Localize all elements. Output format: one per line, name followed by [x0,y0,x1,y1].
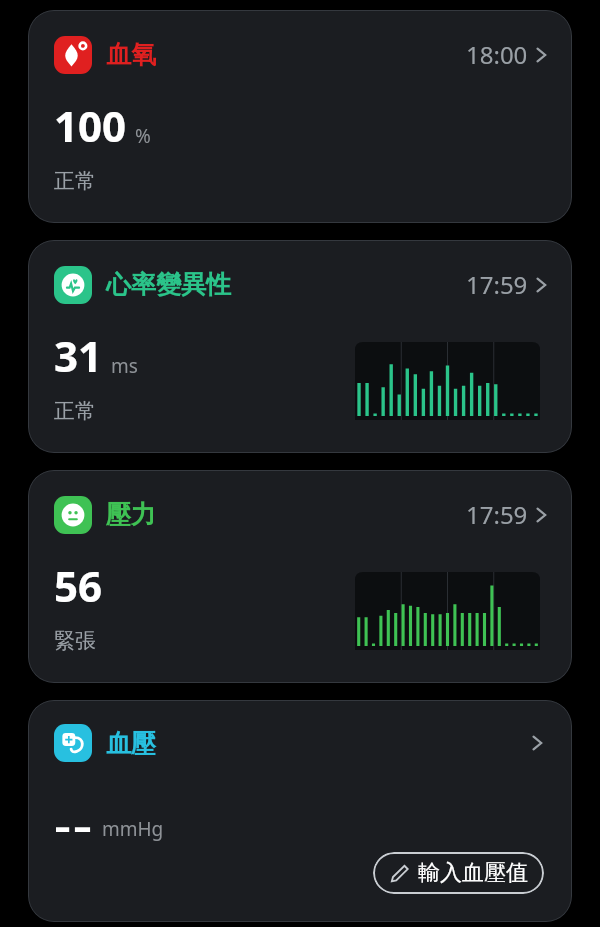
staticText: 56 [54,557,103,614]
button[interactable]: 17:59 [458,494,550,535]
staticText: 31 [54,327,103,384]
staticText: 正常 [54,168,96,194]
staticText: 血壓 [106,728,156,759]
staticText: 17:59 [466,498,528,531]
staticText: 18:00 [466,38,528,71]
staticText: 輸入血壓值 [418,859,528,887]
staticText: 壓力 [106,499,156,530]
button[interactable]: 輸入血壓值 [373,852,544,894]
button[interactable]: 18:00 [458,34,550,75]
staticText: 17:59 [466,268,528,301]
button[interactable]: 血壓 [28,700,572,922]
button[interactable]: 心率變異性 [28,240,572,453]
button[interactable]: 血氧 [28,10,572,223]
staticText: % [135,123,151,149]
staticText: mmHg [102,816,164,842]
button[interactable]: 壓力 [28,470,572,683]
staticText: 血氧 [106,39,156,70]
staticText: 心率變異性 [106,269,231,300]
staticText: 緊張 [54,628,96,654]
staticText: ms [111,353,138,379]
staticText: 正常 [54,398,96,424]
button[interactable]: Open blood pressure details [524,730,550,756]
staticText: 100 [54,97,127,154]
button[interactable]: 17:59 [458,264,550,305]
